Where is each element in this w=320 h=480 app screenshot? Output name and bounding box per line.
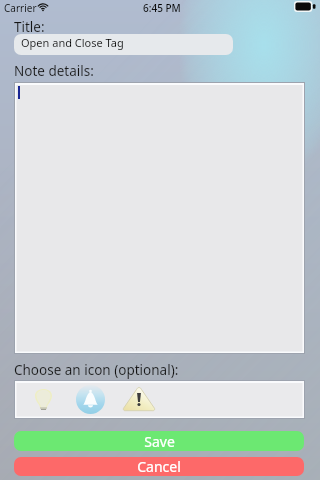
staticText: Choose an icon (optional): — [14, 361, 179, 379]
button[interactable]: Warning icon — [123, 386, 155, 412]
staticText: Open and Close Tag — [21, 35, 124, 50]
button[interactable]: Open and Close Tag — [14, 34, 233, 55]
staticText: Note details: — [14, 62, 94, 80]
staticText: Title: — [14, 18, 45, 36]
button[interactable] — [14, 82, 305, 354]
staticText: 6:45 PM — [143, 1, 181, 15]
button[interactable]: Save — [14, 431, 304, 451]
staticText: Carrier — [4, 1, 37, 15]
staticText: Save — [144, 432, 175, 451]
staticText: Cancel — [137, 457, 181, 476]
button[interactable]: Reminder icon — [76, 385, 105, 414]
button[interactable]: Idea icon — [28, 386, 59, 413]
button[interactable]: Cancel — [14, 457, 304, 476]
